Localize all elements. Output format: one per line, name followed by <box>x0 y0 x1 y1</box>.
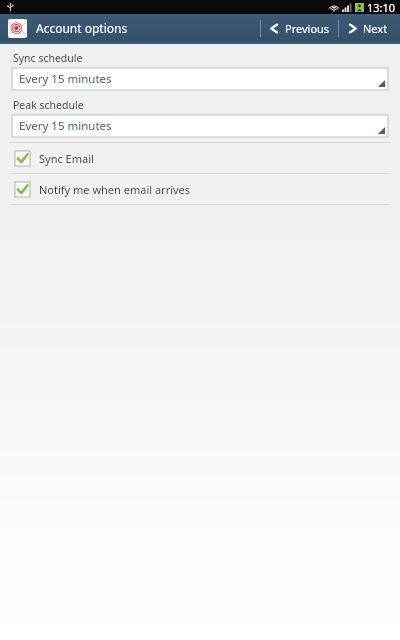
other: Checked <box>15 151 30 166</box>
staticText: Account options <box>36 20 128 36</box>
staticText: 13:10 <box>367 0 396 14</box>
staticText: Sync schedule <box>13 51 83 65</box>
staticText: Next <box>363 21 388 36</box>
button[interactable]: Previous <box>261 14 338 42</box>
button[interactable]: Checked <box>0 174 400 204</box>
staticText: Every 15 minutes <box>19 118 112 134</box>
button[interactable]: Next <box>339 14 396 42</box>
staticText: Notify me when email arrives <box>39 182 191 197</box>
button[interactable]: Sync schedule <box>0 51 400 90</box>
button[interactable]: Peak schedule <box>0 98 400 137</box>
button[interactable]: Checked <box>0 143 400 173</box>
staticText: Peak schedule <box>13 98 84 112</box>
button[interactable]: Account options <box>0 14 136 42</box>
staticText: Every 15 minutes <box>19 71 112 87</box>
staticText: Sync Email <box>39 151 94 166</box>
staticText: Previous <box>285 21 330 36</box>
other: Checked <box>15 182 30 197</box>
